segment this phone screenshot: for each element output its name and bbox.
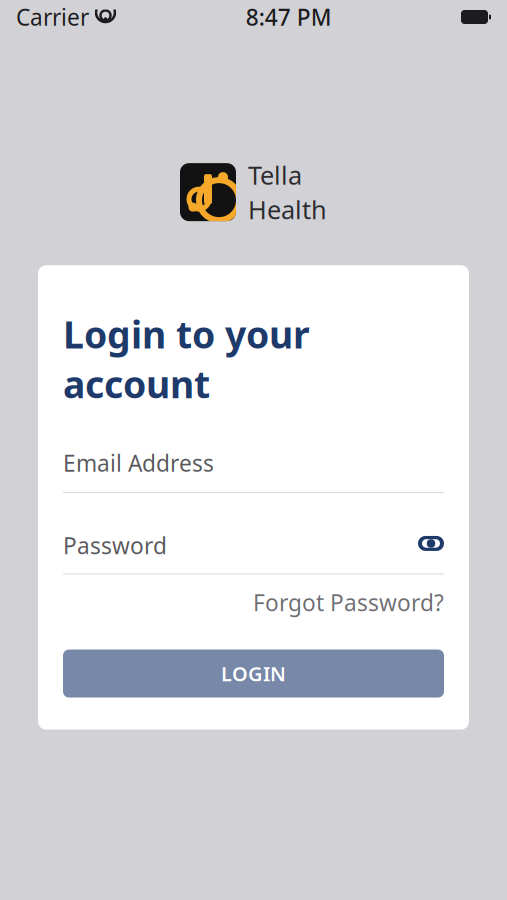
staticText: Email Address (63, 448, 214, 478)
staticText: 8:47 PM (246, 2, 332, 32)
staticText: LOGIN (221, 660, 286, 687)
button[interactable]: Password (63, 532, 444, 572)
button[interactable]: LOGIN (63, 649, 444, 697)
staticText: Login to your account (63, 309, 310, 408)
staticText: Forgot Password? (253, 587, 444, 617)
staticText: Tella (248, 158, 302, 192)
button[interactable]: Forgot Password? (253, 587, 444, 617)
staticText: Health (248, 193, 327, 226)
staticText: Password (63, 530, 167, 560)
button[interactable]: Email Address (63, 452, 444, 488)
staticText: Carrier (16, 2, 89, 32)
